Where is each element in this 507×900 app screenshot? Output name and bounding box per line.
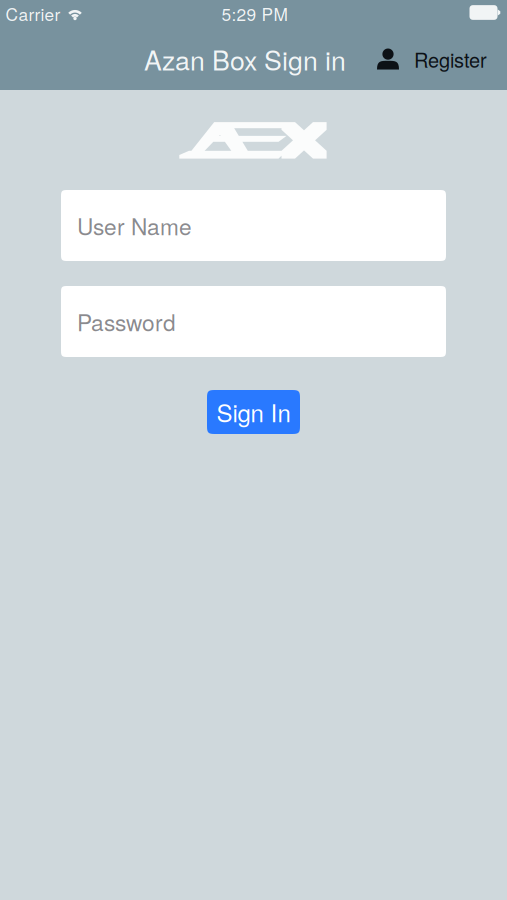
staticText: User Name	[77, 209, 192, 242]
staticText: Password	[77, 305, 176, 338]
button[interactable]: Sign In	[207, 390, 300, 434]
staticText: Carrier	[5, 1, 60, 26]
staticText: 5:29 PM	[221, 1, 287, 26]
staticText: Sign In	[216, 395, 290, 429]
button[interactable]: Register	[377, 45, 487, 73]
staticText: Azan Box Sign in	[144, 40, 346, 78]
staticText: Register	[414, 45, 487, 73]
